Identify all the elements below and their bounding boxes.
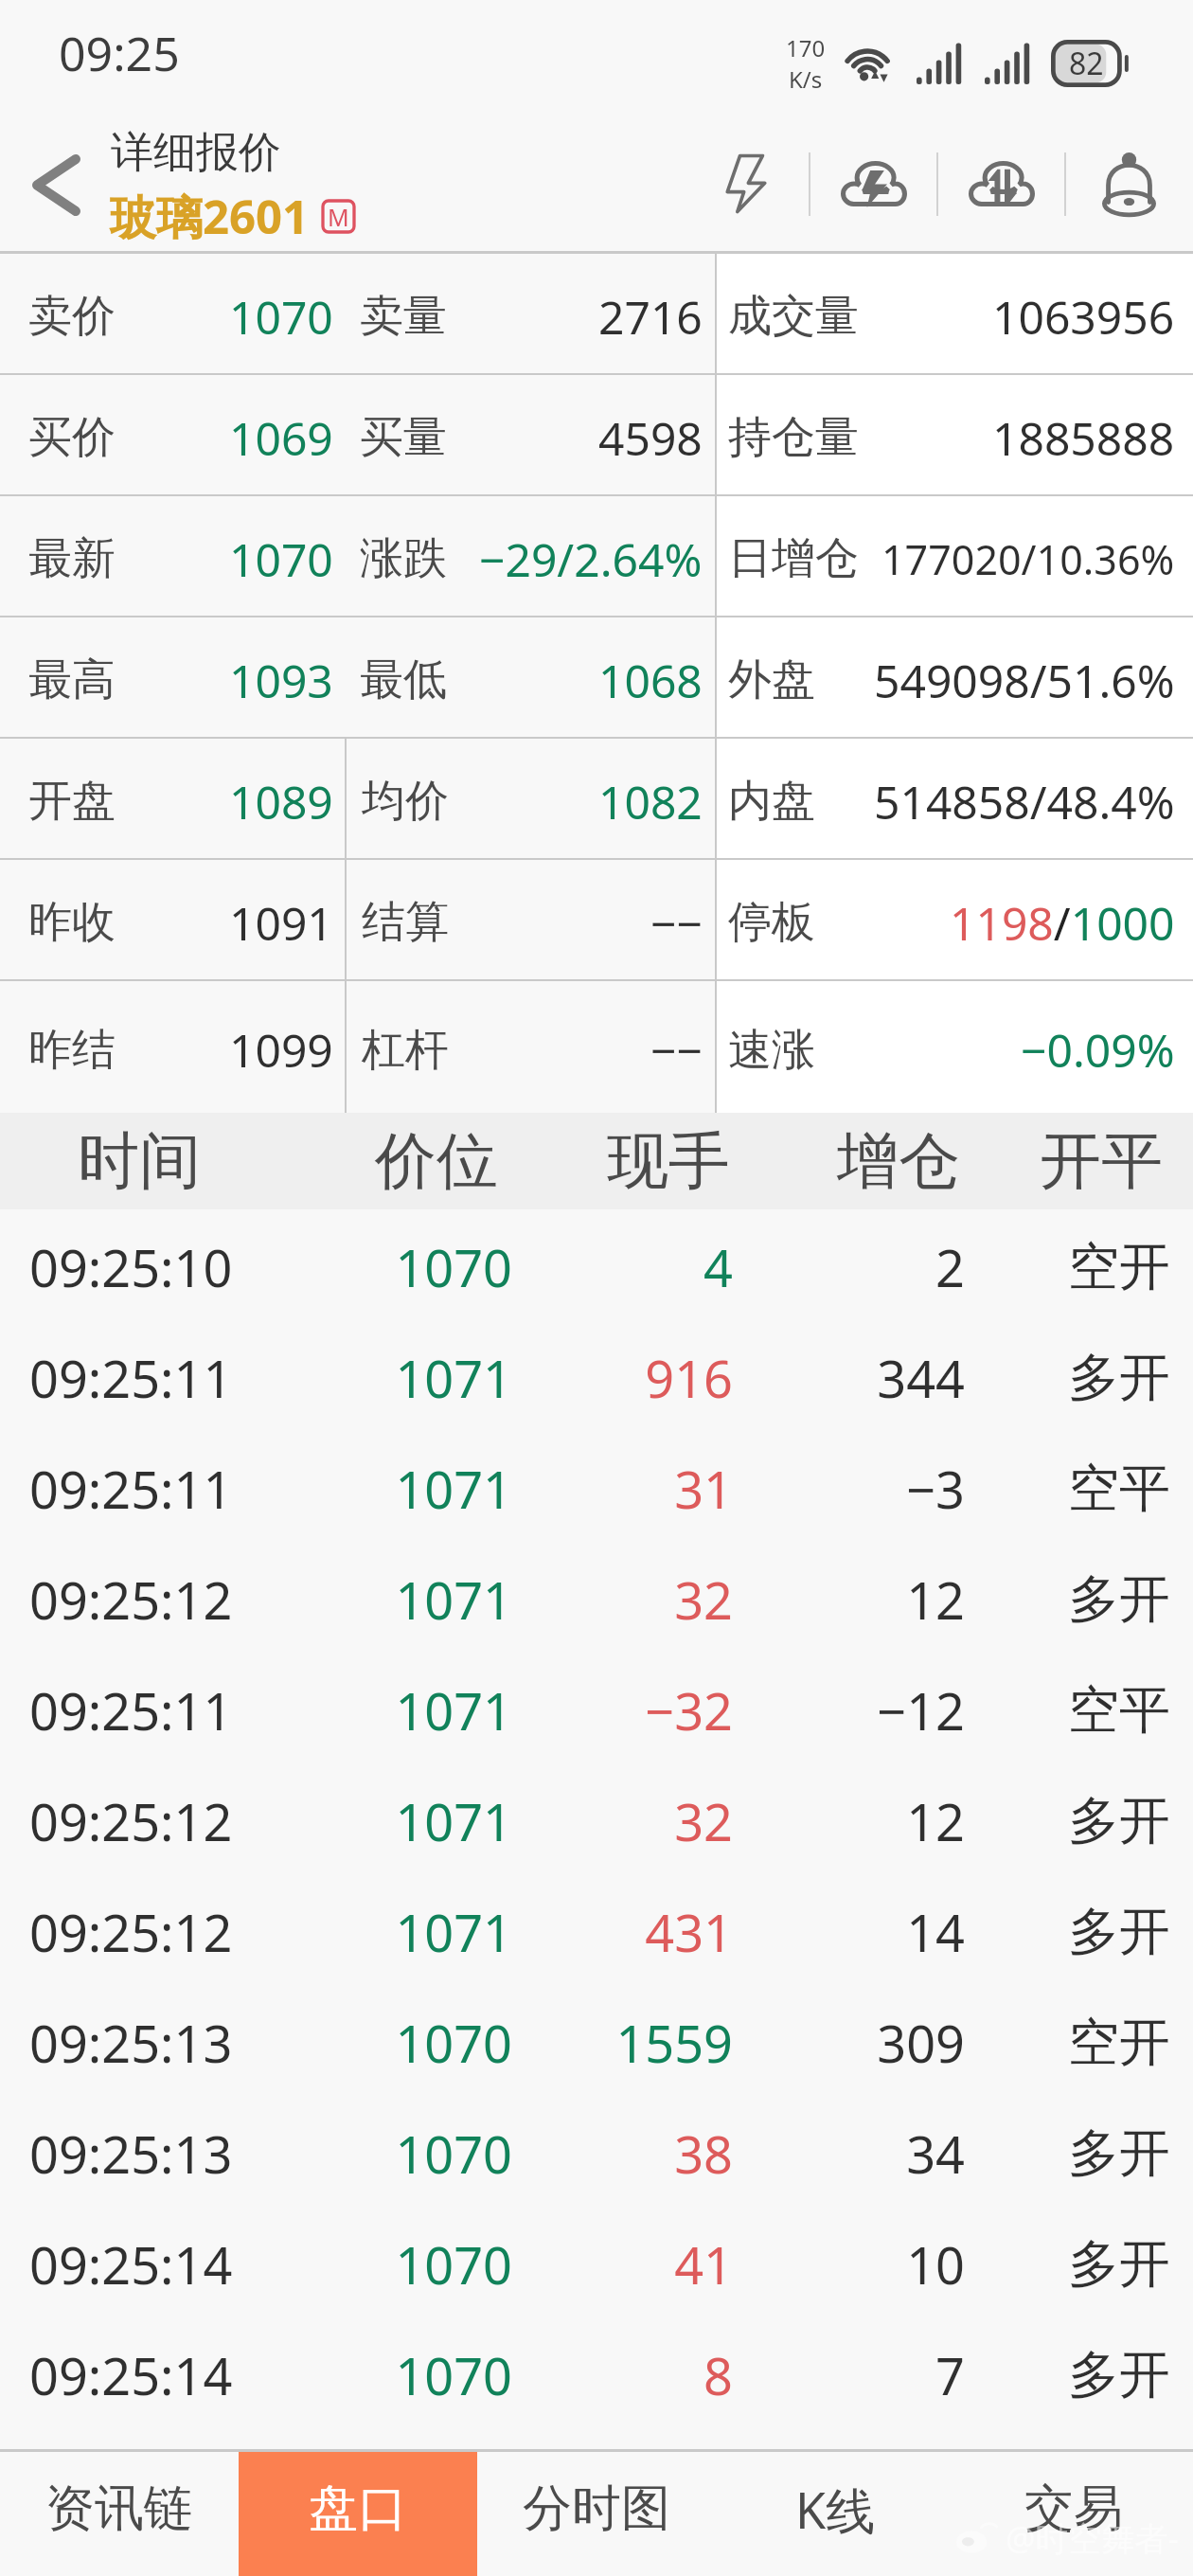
staticText: 1070 [0, 2119, 512, 2189]
staticText: 多开 [1068, 2232, 1170, 2297]
staticText: 买量 [360, 410, 447, 465]
staticText: 82 [1069, 43, 1104, 84]
button[interactable]: 09:25:12 [0, 1763, 1193, 1874]
staticText: K线 [795, 2476, 876, 2543]
staticText: 177020/10.36% [881, 531, 1175, 587]
staticText: 成交量 [728, 289, 859, 344]
staticText: 1089 [229, 771, 333, 832]
button[interactable]: Weather alert [810, 122, 936, 245]
staticText: 1063956 [992, 286, 1175, 348]
staticText: 多开 [1068, 1900, 1170, 1964]
staticText: 卖价 [28, 289, 116, 344]
staticText: 多开 [1068, 1789, 1170, 1853]
button[interactable]: 盘口 [239, 2452, 477, 2576]
staticText: −− [650, 1019, 703, 1081]
staticText: 1071 [0, 1454, 512, 1524]
staticText: −12 [0, 1675, 965, 1745]
staticText: 开盘 [28, 774, 116, 829]
staticText: 分时图 [523, 2478, 670, 2540]
staticText: 09:25:11 [29, 1675, 233, 1745]
button[interactable]: Back [0, 106, 112, 251]
staticText: 速涨 [728, 1023, 815, 1078]
staticText: 09:25:14 [29, 2229, 233, 2299]
staticText: 最新 [28, 531, 116, 586]
staticText: 09:25:12 [29, 1897, 233, 1967]
button[interactable]: 09:25:10 [0, 1209, 1193, 1320]
button[interactable]: 09:25:14 [0, 2317, 1193, 2428]
staticText: 09:25:12 [29, 1565, 233, 1635]
staticText: 1093 [229, 650, 333, 711]
staticText: 买价 [28, 410, 116, 465]
staticText: 多开 [1068, 1567, 1170, 1632]
staticText: 7 [0, 2340, 965, 2410]
button[interactable]: Cloud sync [938, 122, 1064, 245]
button[interactable]: 09:25:11 [0, 1431, 1193, 1542]
button[interactable]: 09:25:13 [0, 1985, 1193, 2096]
staticText: 昨收 [28, 895, 116, 950]
staticText: 1091 [229, 892, 333, 954]
staticText: 盘口 [309, 2478, 407, 2540]
staticText: 09:25:13 [29, 2008, 233, 2078]
staticText: 1071 [0, 1897, 512, 1967]
staticText: 12 [0, 1786, 965, 1856]
staticText: 结算 [362, 895, 449, 950]
staticText: 1071 [0, 1786, 512, 1856]
staticText: 多开 [1068, 1346, 1170, 1410]
staticText: 详细报价 [111, 126, 281, 180]
staticText: 多开 [1068, 2121, 1170, 2186]
staticText: 持仓量 [728, 410, 859, 465]
button[interactable]: Flash [683, 122, 809, 245]
staticText: 09:25:14 [29, 2340, 233, 2410]
staticText: −0.09% [1021, 1019, 1175, 1081]
staticText: 杠杆 [362, 1023, 449, 1078]
staticText: 外盘 [728, 653, 815, 707]
staticText: 2 [0, 1232, 965, 1302]
staticText: 431 [0, 1897, 733, 1967]
staticText: 日增仓 [728, 531, 859, 586]
staticText: 1068 [598, 650, 703, 711]
staticText: 资讯链 [45, 2478, 193, 2540]
staticText: 空开 [1068, 1235, 1170, 1299]
staticText: 1071 [0, 1565, 512, 1635]
button[interactable]: 09:25:12 [0, 1874, 1193, 1985]
staticText: 09:25:11 [29, 1454, 233, 1524]
button[interactable]: 09:25:12 [0, 1542, 1193, 1653]
staticText: 10 [0, 2229, 965, 2299]
button[interactable]: Notifications [1066, 122, 1192, 245]
staticText: 最高 [28, 653, 116, 707]
staticText: K/s [789, 63, 823, 95]
staticText: 31 [0, 1454, 733, 1524]
staticText: 2716 [598, 286, 703, 348]
button[interactable]: 09:25:11 [0, 1320, 1193, 1431]
staticText: 09:25:12 [29, 1786, 233, 1856]
staticText: 空开 [1068, 2011, 1170, 2075]
staticText: 现手 [0, 1122, 730, 1200]
button[interactable]: 09:25:11 [0, 1653, 1193, 1763]
button[interactable]: 分时图 [477, 2452, 716, 2576]
staticText: 38 [0, 2119, 733, 2189]
staticText: 14 [0, 1897, 965, 1967]
staticText: 4 [0, 1232, 733, 1302]
button[interactable]: 交易 [954, 2452, 1193, 2576]
staticText: 空平 [1068, 1678, 1170, 1743]
staticText: 开平 [1040, 1122, 1163, 1200]
staticText: 1070 [0, 1232, 512, 1302]
button[interactable]: 09:25:14 [0, 2207, 1193, 2317]
staticText: 1069 [229, 407, 333, 469]
button[interactable]: K线 [716, 2452, 954, 2576]
button[interactable]: 09:25:13 [0, 2096, 1193, 2207]
staticText: 昨结 [28, 1023, 116, 1078]
staticText: 玻璃2601 [110, 185, 310, 248]
staticText: 1559 [0, 2008, 733, 2078]
staticText: 价位 [0, 1122, 498, 1200]
staticText: 内盘 [728, 774, 815, 829]
staticText: 多开 [1068, 2343, 1170, 2407]
staticText: 32 [0, 1786, 733, 1856]
staticText: 916 [0, 1343, 733, 1413]
staticText: 1082 [598, 771, 703, 832]
staticText: 1070 [0, 2229, 512, 2299]
staticText: 344 [0, 1343, 965, 1413]
staticText: 309 [0, 2008, 965, 2078]
button[interactable]: 资讯链 [0, 2452, 239, 2576]
staticText: 空平 [1068, 1457, 1170, 1521]
